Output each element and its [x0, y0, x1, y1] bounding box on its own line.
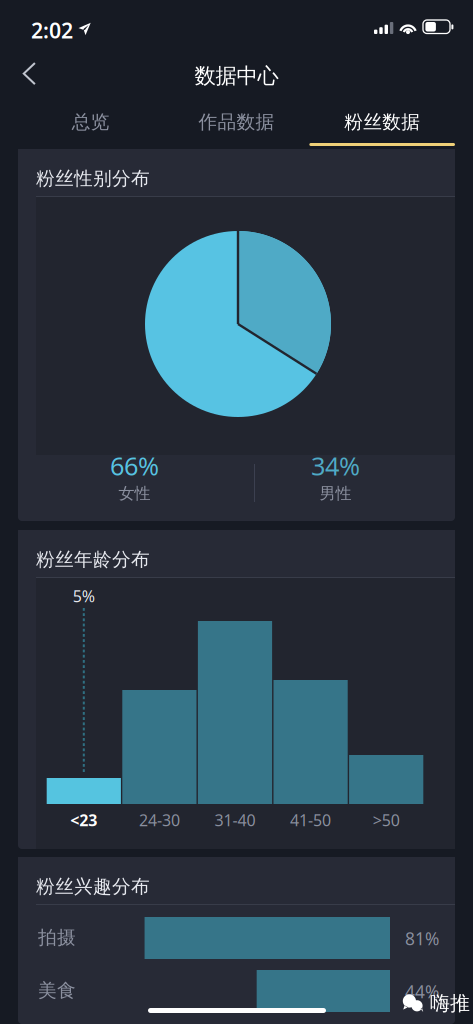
staticText: 粉丝兴趣分布	[36, 875, 150, 898]
button[interactable]: 总览	[18, 104, 164, 146]
staticText: 66%	[110, 449, 159, 482]
staticText: <23	[70, 809, 97, 831]
staticText: 粉丝年龄分布	[36, 548, 150, 571]
staticText: 粉丝性别分布	[36, 167, 150, 190]
staticText: 5%	[73, 585, 95, 607]
staticText: 拍摄	[38, 926, 76, 949]
staticText: >50	[373, 809, 400, 831]
button[interactable]: 作品数据	[164, 104, 309, 146]
staticText: 数据中心	[194, 63, 278, 89]
staticText: 男性	[319, 483, 351, 503]
staticText: 美食	[38, 979, 76, 1002]
staticText: 嗨推	[430, 991, 470, 1016]
staticText: 总览	[72, 110, 110, 133]
staticText: 粉丝数据	[344, 110, 420, 133]
staticText: 2:02	[31, 16, 73, 44]
button[interactable]: Back	[0, 44, 58, 94]
staticText: 24-30	[139, 809, 180, 831]
button[interactable]: 粉丝数据	[309, 104, 455, 146]
staticText: 作品数据	[198, 110, 274, 133]
staticText: 31-40	[214, 809, 255, 831]
staticText: 44%	[405, 980, 439, 1003]
staticText: 81%	[405, 927, 439, 950]
staticText: 34%	[311, 449, 360, 482]
staticText: 41-50	[290, 809, 331, 831]
staticText: 女性	[118, 483, 150, 503]
